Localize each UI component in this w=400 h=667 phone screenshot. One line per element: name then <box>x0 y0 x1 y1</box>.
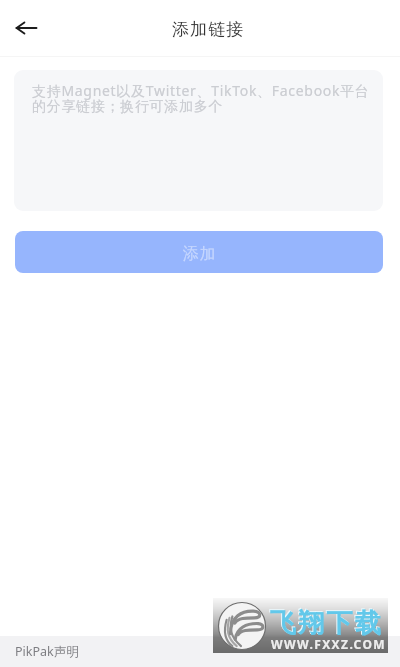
staticText: PikPak声明 <box>15 643 79 660</box>
staticText: 飞翔下载 <box>269 606 383 639</box>
staticText: WWW.FXXZ.COM <box>271 636 387 652</box>
staticText: 支持Magnet以及Twitter、TikTok、Facebook平台的分享链接… <box>32 81 374 116</box>
button[interactable]: 支持Magnet以及Twitter、TikTok、Facebook平台的分享链接… <box>14 70 383 211</box>
staticText: 飞翔下载 <box>270 607 384 640</box>
button[interactable]: Back <box>4 6 48 50</box>
staticText: 添加 <box>182 244 216 264</box>
staticText: 添加链接 <box>172 19 245 40</box>
button[interactable]: PikPak声明 <box>0 636 400 667</box>
button[interactable]: 添加 <box>15 231 383 273</box>
